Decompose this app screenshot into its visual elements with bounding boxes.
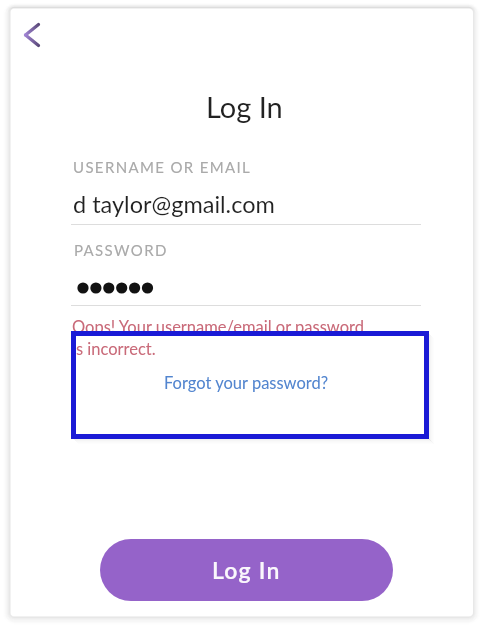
button[interactable]: PASSWORD (71, 237, 421, 306)
button[interactable]: Back (11, 9, 58, 61)
staticText: USERNAME OR EMAIL (73, 158, 252, 176)
staticText: Forgot your password? (164, 373, 329, 393)
staticText: Oops! Your username/email or password is… (72, 317, 372, 359)
button[interactable]: Forgot your password? (164, 373, 329, 393)
button[interactable]: Log In (100, 539, 393, 601)
staticText: Log In (212, 556, 281, 584)
staticText: Log In (206, 89, 283, 124)
staticText: d taylor@gmail.com (73, 190, 275, 218)
button[interactable]: USERNAME OR EMAIL (71, 154, 421, 225)
staticText: PASSWORD (74, 241, 168, 259)
